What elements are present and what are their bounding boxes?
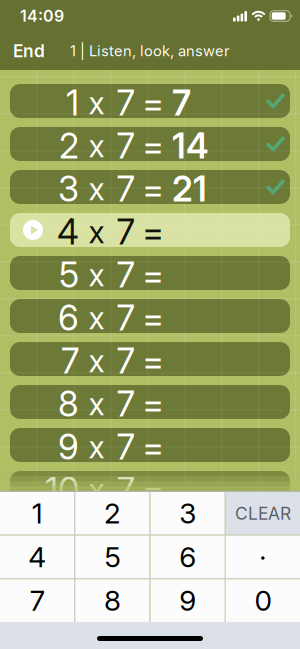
staticText: x [88,386,104,422]
staticText: 7 [116,341,134,381]
staticText: = [142,212,164,252]
staticText: 21 [172,169,207,209]
button[interactable]: Play [23,220,43,240]
button[interactable]: 2 [75,492,149,535]
staticText: = [142,298,164,338]
staticText: 7 [30,584,45,617]
staticText: 7 [172,83,191,123]
staticText: 2 [104,497,121,530]
button[interactable]: Decimal point [226,536,300,578]
staticText: 8 [104,584,121,617]
staticText: x [88,257,104,293]
staticText: 9 [58,427,79,467]
staticText: 5 [59,255,79,295]
staticText: 7 [116,298,134,338]
staticText: 7 [116,384,134,424]
staticText: 7 [116,212,134,252]
button[interactable]: 5 [75,536,149,578]
staticText: 7 [116,83,134,123]
button[interactable]: End [0,41,45,61]
staticText: = [142,470,164,510]
staticText: x [88,429,104,465]
staticText: x [88,300,104,336]
staticText: 3 [179,497,196,530]
staticText: 14 [172,126,209,166]
staticText: 4 [57,212,79,252]
staticText: 1 [32,497,43,530]
button[interactable]: 6 [150,536,225,578]
staticText: x [88,214,104,250]
staticText: 4 [28,540,46,573]
staticText: 6 [58,298,79,338]
staticText: = [142,341,164,381]
staticText: 0 [254,584,271,617]
staticText: 9 [179,584,196,617]
staticText: = [142,83,164,123]
staticText: x [88,171,104,207]
staticText: 5 [104,540,120,573]
staticText: 8 [58,384,79,424]
button[interactable]: 1 [0,492,74,535]
button[interactable]: 0 [226,579,300,622]
staticText: x [88,343,104,379]
staticText: 6 [179,540,196,573]
staticText: 7 [116,470,134,510]
staticText: 14:09 [20,7,64,25]
staticText: = [142,169,164,209]
staticText: 1 | Listen, look, answer [70,42,230,60]
staticText: 7 [116,126,134,166]
staticText: 2 [59,126,79,166]
staticText: 7 [116,427,134,467]
button[interactable]: 9 [150,579,225,622]
staticText: 1 [66,83,79,123]
staticText: 10 [45,470,79,510]
staticText: x [88,128,104,164]
staticText: CLEAR [235,503,291,523]
staticText: End [13,41,45,61]
staticText: 7 [116,255,134,295]
staticText: = [142,427,164,467]
button[interactable]: CLEAR [226,492,300,535]
staticText: x [88,472,104,508]
staticText: 3 [58,169,79,209]
button[interactable]: 8 [75,579,149,622]
button[interactable]: 4 [0,536,74,578]
staticText: = [142,384,164,424]
staticText: = [142,126,164,166]
staticText: = [142,255,164,295]
staticText: 7 [116,169,134,209]
button[interactable]: 3 [150,492,225,535]
button[interactable]: 7 [0,579,74,622]
staticText: x [88,85,104,121]
staticText: 7 [61,341,79,381]
